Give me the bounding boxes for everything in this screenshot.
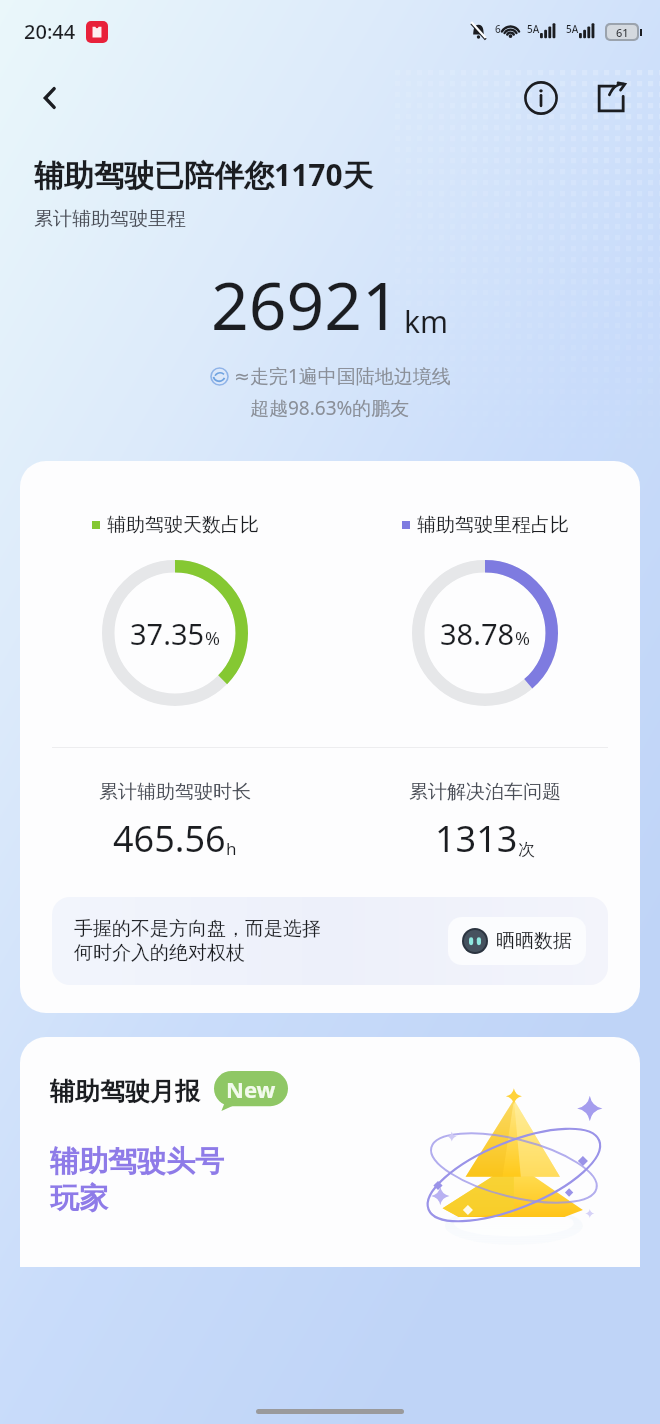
button[interactable]: Share [588,75,634,121]
staticText: 玩家 [50,1180,108,1217]
staticText: km [404,301,449,342]
button[interactable]: Info [518,75,564,121]
staticText: 超越98.63%的鹏友 [250,395,410,421]
staticText: 辅助驾驶已陪伴您1170天 [34,154,373,195]
staticText: 465.56 [113,814,226,863]
staticText: 辅助驾驶头号 [50,1143,224,1180]
button[interactable]: 辅助驾驶月报 [20,1037,640,1267]
staticText: 累计辅助驾驶时长 [99,780,251,804]
staticText: New [226,1074,276,1104]
button[interactable]: Back [26,74,74,122]
staticText: 61 [616,25,629,39]
staticText: % [205,626,220,651]
staticText: 辅助驾驶天数占比 [107,513,259,537]
staticText: h [226,837,237,860]
staticText: 38.78 [440,614,515,653]
button[interactable]: 晒晒数据 [448,917,586,965]
staticText: 累计解决泊车问题 [409,780,561,804]
staticText: 5A [527,22,540,36]
staticText: 37.35 [130,614,205,653]
staticText: 手握的不是方向盘，而是选择 [74,917,321,941]
staticText: 晒晒数据 [496,929,572,953]
staticText: ≈走完1遍中国陆地边境线 [234,363,451,389]
staticText: 1313 [435,814,518,863]
staticText: 26921 [211,259,400,349]
staticText: 辅助驾驶里程占比 [417,513,569,537]
staticText: 次 [518,839,535,860]
staticText: % [515,626,530,651]
staticText: 5A [566,22,579,36]
staticText: 辅助驾驶月报 [50,1076,200,1107]
staticText: 6 [495,22,501,36]
staticText: 20:44 [24,18,76,45]
staticText: 何时介入的绝对权杖 [74,941,245,965]
staticText: 累计辅助驾驶里程 [34,207,186,231]
